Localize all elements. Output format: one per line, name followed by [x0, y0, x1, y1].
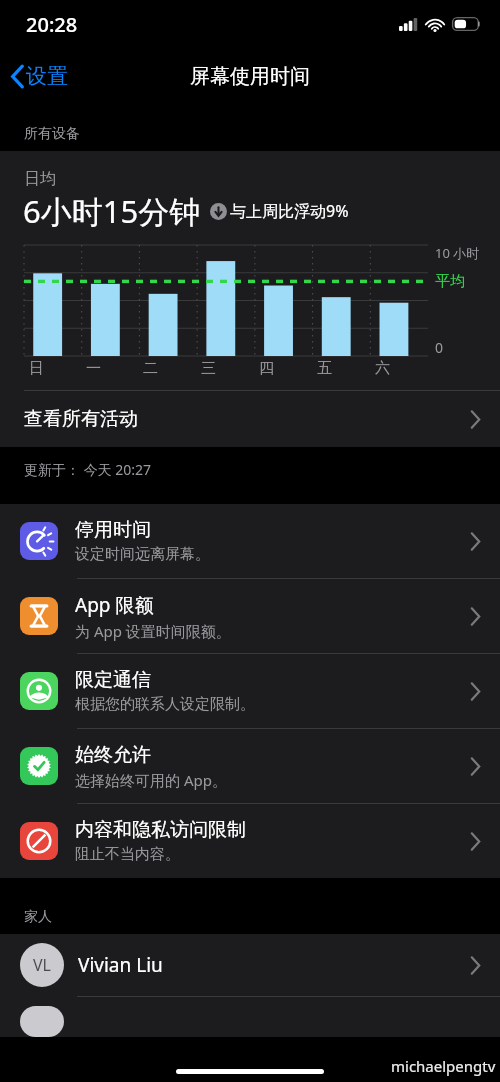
staticText: 始终允许 — [75, 743, 151, 767]
staticText: 根据您的联系人设定限制。 — [75, 695, 255, 714]
staticText: 家人 — [24, 908, 52, 926]
staticText: 阻止不当内容。 — [75, 845, 180, 864]
button[interactable]: VL — [0, 934, 500, 997]
staticText: 三 — [201, 359, 216, 378]
other: 打开 — [470, 956, 481, 975]
other: 打开 — [470, 757, 481, 776]
staticText: 设定时间远离屏幕。 — [75, 545, 210, 564]
staticText: 6小时15分钟 — [23, 190, 201, 232]
button[interactable]: 设置 — [0, 56, 78, 96]
staticText: 选择始终可用的 App。 — [75, 770, 227, 790]
staticText: 六 — [375, 359, 390, 378]
other: 打开 — [470, 832, 481, 851]
button[interactable]: 查看所有活动 — [0, 391, 500, 447]
staticText: 二 — [143, 359, 158, 378]
staticText: 四 — [259, 359, 274, 378]
staticText: 限定通信 — [75, 668, 151, 692]
staticText: 屏幕使用时间 — [190, 64, 310, 89]
staticText: 五 — [317, 359, 332, 378]
staticText: 内容和隐私访问限制 — [75, 818, 246, 842]
staticText: 一 — [86, 359, 101, 378]
staticText: 与上周比浮动9% — [230, 200, 349, 222]
button[interactable] — [0, 997, 500, 1037]
other: 打开 — [470, 607, 481, 626]
button[interactable]: 始终允许 — [0, 729, 500, 804]
staticText: 10 小时 — [435, 244, 480, 262]
staticText: 所有设备 — [24, 125, 80, 143]
staticText: Vivian Liu — [78, 952, 470, 978]
staticText: 为 App 设置时间限额。 — [75, 621, 231, 641]
staticText: 0 — [435, 338, 444, 357]
staticText: 平均 — [435, 272, 465, 291]
staticText: michaelpengtv — [391, 1056, 496, 1076]
other: 打开 — [470, 410, 481, 429]
button[interactable]: App 限额 — [0, 579, 500, 654]
button[interactable]: 停用时间 — [0, 504, 500, 579]
staticText: VL — [33, 954, 51, 976]
other: 打开 — [470, 532, 481, 551]
staticText: App 限额 — [75, 592, 154, 618]
staticText: 20:28 — [26, 11, 78, 38]
staticText: 日 — [29, 359, 44, 378]
staticText: 停用时间 — [75, 518, 151, 542]
staticText: 设置 — [26, 63, 68, 89]
button[interactable]: 内容和隐私访问限制 — [0, 804, 500, 878]
staticText: 更新于： 今天 20:27 — [24, 460, 152, 479]
staticText: 查看所有活动 — [24, 407, 138, 431]
other: 打开 — [470, 682, 481, 701]
staticText: 日均 — [24, 169, 56, 189]
button[interactable]: 限定通信 — [0, 654, 500, 729]
